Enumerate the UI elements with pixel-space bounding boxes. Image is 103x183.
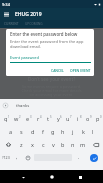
staticText: 1 xyxy=(8,115,10,119)
button[interactable]: g xyxy=(48,125,58,138)
button[interactable]: More suggestions xyxy=(1,101,10,110)
button[interactable]: e xyxy=(22,112,33,125)
button[interactable]: CANCEL xyxy=(49,67,66,74)
button[interactable]: j xyxy=(68,125,78,138)
staticText: 7 xyxy=(70,115,72,119)
button[interactable]: CURRENT xyxy=(0,20,22,28)
button[interactable]: l xyxy=(88,125,98,138)
staticText: 9:34 xyxy=(2,2,10,7)
staticText: Event password xyxy=(10,55,39,60)
staticText: 4 xyxy=(40,115,42,119)
staticText: ?123 xyxy=(2,155,10,160)
staticText: u xyxy=(66,115,70,122)
button[interactable]: n xyxy=(68,138,78,151)
staticText: a xyxy=(9,128,13,135)
staticText: s xyxy=(20,128,23,135)
staticText: . xyxy=(78,154,80,161)
button[interactable]: q xyxy=(0,112,11,125)
staticText: f xyxy=(42,128,44,135)
staticText: j xyxy=(72,128,74,135)
button[interactable]: UPCOMING xyxy=(22,20,46,28)
staticText: 8 xyxy=(80,115,82,119)
button[interactable]: OPEN EVENT xyxy=(68,67,93,74)
staticText: h xyxy=(61,128,65,135)
staticText: p xyxy=(96,115,100,122)
staticText: q xyxy=(4,115,8,122)
button[interactable]: Emoji xyxy=(23,151,33,164)
button[interactable]: Backspace xyxy=(88,138,103,151)
staticText: t xyxy=(47,115,49,122)
staticText: x xyxy=(31,141,34,148)
staticText: 2 xyxy=(19,115,21,119)
button[interactable]: . xyxy=(73,151,85,164)
staticText: r xyxy=(37,115,40,122)
staticText: c xyxy=(42,141,45,148)
button[interactable]: f xyxy=(38,125,48,138)
button[interactable]: c xyxy=(38,138,48,151)
button[interactable]: Recents xyxy=(74,171,86,183)
staticText: UPCOMING xyxy=(25,22,43,26)
button[interactable]: y xyxy=(53,112,63,125)
staticText: k xyxy=(82,128,85,135)
staticText: 5 xyxy=(50,115,52,119)
button[interactable]: d xyxy=(27,125,38,138)
staticText: CURRENT xyxy=(4,22,19,26)
button[interactable]: u xyxy=(63,112,73,125)
button[interactable]: s xyxy=(16,125,27,138)
staticText: e xyxy=(26,115,30,122)
staticText: y xyxy=(57,115,60,122)
button[interactable]: o xyxy=(83,112,93,125)
button[interactable]: Menu xyxy=(2,10,11,19)
staticText: m xyxy=(80,141,86,148)
staticText: EHUG 2019 xyxy=(15,11,42,18)
button[interactable]: Home xyxy=(46,171,58,183)
staticText: b xyxy=(61,141,65,148)
button[interactable]: m xyxy=(78,138,88,151)
staticText: OPEN EVENT xyxy=(70,68,91,73)
staticText: i xyxy=(77,115,79,122)
button[interactable]: z xyxy=(16,138,27,151)
button[interactable]: Shift xyxy=(0,138,16,151)
staticText: CANCEL xyxy=(51,68,64,73)
staticText: 3 xyxy=(30,115,32,119)
staticText: v xyxy=(52,141,55,148)
button[interactable]: ?123 xyxy=(0,151,11,164)
button[interactable]: a xyxy=(5,125,16,138)
button[interactable]: k xyxy=(78,125,88,138)
staticText: Enter the event password from the app do… xyxy=(10,39,84,49)
button[interactable]: v xyxy=(48,138,58,151)
staticText: 9 xyxy=(90,115,92,119)
button[interactable]: x xyxy=(27,138,38,151)
staticText: d xyxy=(31,128,35,135)
button[interactable]: b xyxy=(58,138,68,151)
staticText: n xyxy=(71,141,75,148)
button[interactable]: , xyxy=(11,151,23,164)
staticText: g xyxy=(51,128,55,135)
button[interactable]: i xyxy=(73,112,83,125)
staticText: z xyxy=(20,141,23,148)
button[interactable]: r xyxy=(33,112,43,125)
staticText: thanks xyxy=(16,103,30,109)
staticText: 6 xyxy=(60,115,62,119)
button[interactable]: Enter xyxy=(85,151,103,164)
staticText: , xyxy=(16,154,18,161)
button[interactable]: h xyxy=(58,125,68,138)
staticText: w xyxy=(14,115,19,122)
staticText: l xyxy=(92,128,94,135)
button[interactable]: w xyxy=(11,112,22,125)
button[interactable]: t xyxy=(43,112,53,125)
staticText: o xyxy=(86,115,90,122)
staticText: Enter the event password below xyxy=(10,31,78,37)
staticText: 0 xyxy=(100,115,102,119)
button[interactable]: Close keyboard xyxy=(17,171,29,183)
button[interactable]: p xyxy=(93,112,103,125)
staticText: Don't see your event? xyxy=(28,76,76,82)
